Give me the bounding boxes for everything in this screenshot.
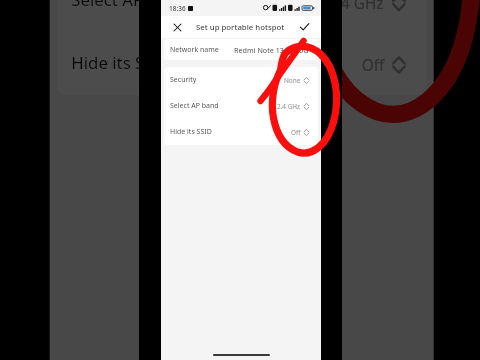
staticText: Select AP band — [170, 101, 219, 111]
button[interactable]: Network name — [164, 39, 318, 60]
button[interactable]: Hide its SSID — [57, 33, 426, 95]
button[interactable]: Select AP band — [164, 93, 318, 119]
staticText: Hide its SSID — [71, 52, 172, 76]
staticText: 2.4 GHz — [277, 102, 301, 111]
button[interactable]: Security — [164, 67, 318, 93]
staticText: Set up portable hotspot — [196, 22, 285, 33]
staticText: None — [284, 76, 301, 85]
staticText: Network name — [170, 45, 219, 55]
button[interactable]: Hide its SSID — [164, 119, 318, 145]
button[interactable]: Close — [161, 16, 193, 38]
staticText: 2.4 GHz — [328, 0, 386, 13]
staticText: 18:36 — [169, 4, 186, 13]
staticText: Off — [291, 128, 301, 137]
staticText: Select AP band — [71, 0, 189, 13]
staticText: Off — [362, 54, 386, 76]
button[interactable]: Done — [287, 16, 321, 38]
staticText: Redmi Note 13 Pro 5G — [234, 45, 309, 55]
staticText: Security — [170, 75, 197, 85]
staticText: Hide its SSID — [170, 127, 212, 137]
button[interactable]: Select AP band — [57, 0, 426, 33]
